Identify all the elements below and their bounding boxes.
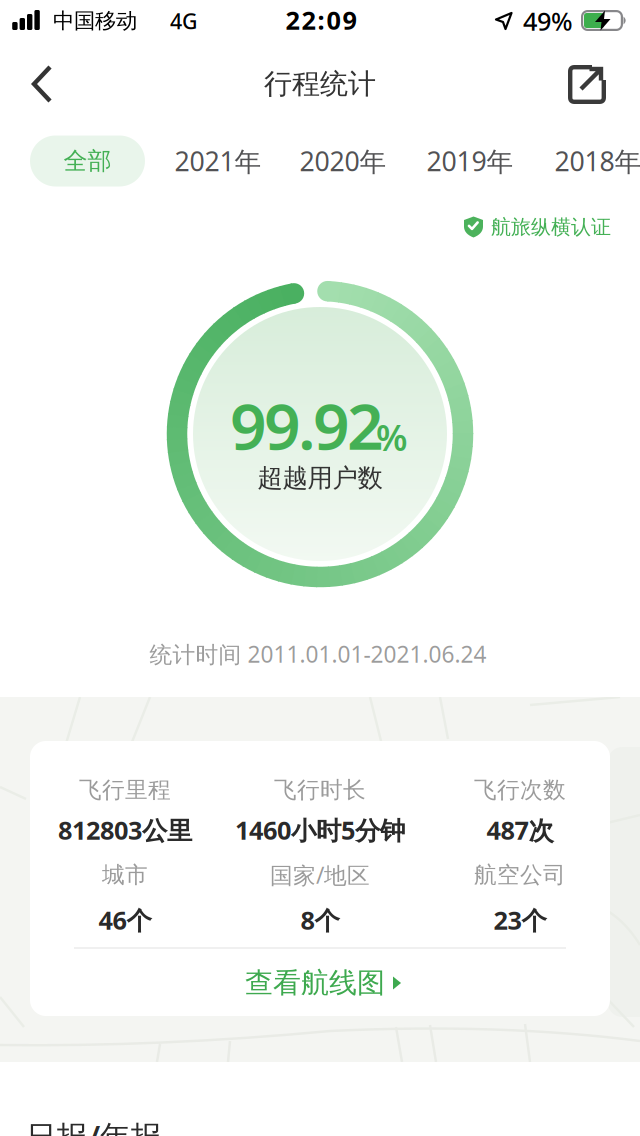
staticText: 中国移动 <box>53 8 137 34</box>
staticText: 812803公里 <box>58 813 192 847</box>
staticText: 2019年 <box>426 143 513 179</box>
staticText: 日报/年报 <box>26 1116 162 1136</box>
staticText: % <box>376 413 408 461</box>
button[interactable]: 2021年 <box>168 137 267 185</box>
button[interactable]: 全部 <box>30 135 145 186</box>
button[interactable] <box>560 57 614 112</box>
staticText: 统计时间 2011.01.01-2021.06.24 <box>149 639 486 669</box>
staticText: 飞行里程 <box>79 776 171 804</box>
staticText: 1460小时5分钟 <box>235 813 405 847</box>
staticText: 22:09 <box>285 3 356 37</box>
staticText: 46个 <box>98 903 151 937</box>
button[interactable]: 航旅纵横认证 <box>463 215 611 239</box>
button[interactable] <box>22 55 62 113</box>
staticText: 航空公司 <box>474 861 566 889</box>
staticText: 49% <box>523 4 573 38</box>
staticText: 行程统计 <box>264 67 376 101</box>
staticText: 2018年 <box>554 143 640 179</box>
staticText: 查看航线图 <box>245 966 385 1000</box>
button[interactable]: 2019年 <box>420 137 519 185</box>
staticText: 487次 <box>486 813 553 847</box>
staticText: 城市 <box>102 861 148 889</box>
staticText: 8个 <box>300 903 339 937</box>
staticText: 2021年 <box>174 143 261 179</box>
staticText: 4G <box>170 7 198 35</box>
staticText: 99.92 <box>230 382 384 467</box>
staticText: 2020年 <box>299 143 386 179</box>
button[interactable]: 查看航线图 <box>237 958 409 1008</box>
staticText: 全部 <box>63 146 111 176</box>
staticText: 23个 <box>493 903 546 937</box>
staticText: 超越用户数 <box>257 462 382 493</box>
staticText: 飞行时长 <box>274 776 366 804</box>
staticText: 飞行次数 <box>474 776 566 804</box>
staticText: 航旅纵横认证 <box>491 215 611 239</box>
staticText: 国家/地区 <box>270 860 370 890</box>
button[interactable]: 2018年 <box>548 137 640 185</box>
button[interactable]: 2020年 <box>293 137 392 185</box>
